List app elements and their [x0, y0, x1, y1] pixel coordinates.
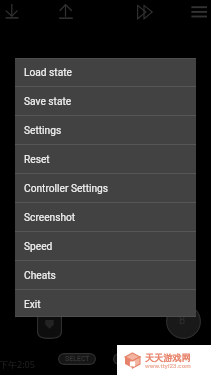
button[interactable]: START	[113, 353, 151, 365]
button[interactable]: B button	[166, 304, 201, 339]
staticText: Exit	[24, 299, 41, 311]
staticText: SELECT	[65, 355, 90, 363]
staticText: B	[179, 315, 186, 327]
button[interactable]: Settings	[15, 116, 196, 145]
staticText: Screenshot	[24, 212, 76, 224]
staticText: Save state	[24, 96, 72, 108]
staticText: Settings	[24, 125, 62, 137]
staticText: Controller Settings	[24, 183, 109, 195]
button[interactable]: Screenshot	[15, 203, 196, 232]
button[interactable]: Save state	[15, 87, 196, 116]
button[interactable]: Load state	[15, 58, 196, 87]
button[interactable]: Save state	[54, 0, 78, 24]
staticText: Cheats	[24, 270, 56, 282]
button[interactable]: Controller Settings	[15, 174, 196, 203]
staticText: START	[122, 355, 143, 363]
button[interactable]: SELECT	[58, 353, 96, 365]
staticText: www.ttyl23.com	[145, 362, 191, 369]
button[interactable]: Reset	[15, 145, 196, 174]
button[interactable]: Cheats	[15, 261, 196, 290]
staticText: Load state	[24, 67, 72, 79]
staticText: Reset	[24, 154, 50, 166]
button[interactable]: Speed	[15, 232, 196, 261]
button[interactable]: Menu	[187, 0, 211, 24]
staticText: Speed	[24, 241, 53, 253]
button[interactable]: D-pad down	[37, 296, 62, 339]
button[interactable]: Exit	[15, 290, 196, 319]
button[interactable]: Fast forward	[133, 0, 157, 24]
staticText: 下午2:05	[0, 358, 35, 370]
button[interactable]: Load state	[0, 0, 24, 24]
staticText: 天天游戏网	[145, 352, 191, 363]
